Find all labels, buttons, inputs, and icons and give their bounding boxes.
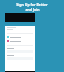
staticText: and Join [25, 7, 40, 12]
staticText: Sign Up for Better [16, 2, 48, 7]
